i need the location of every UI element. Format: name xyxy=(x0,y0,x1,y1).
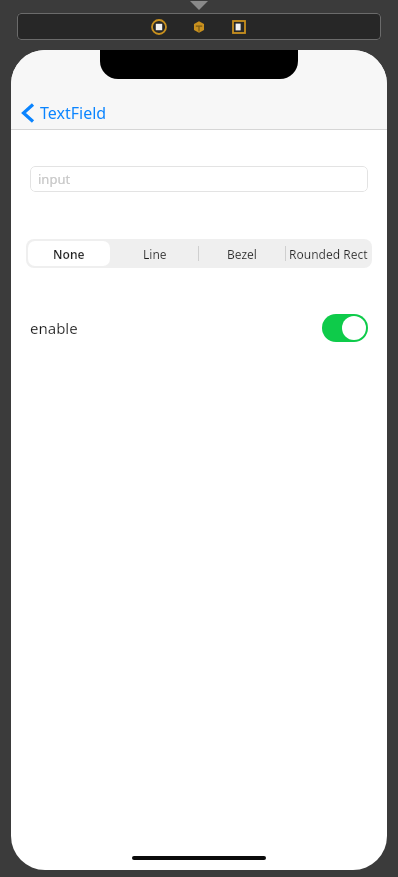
staticText: enable xyxy=(30,318,78,338)
staticText: Rounded Rect xyxy=(289,246,368,262)
button[interactable]: Stop xyxy=(149,17,169,37)
button[interactable]: Layout Inspector xyxy=(189,17,209,37)
staticText: Line xyxy=(143,246,167,262)
button[interactable]: input xyxy=(30,166,368,192)
staticText: Bezel xyxy=(227,246,257,262)
button[interactable]: enable toggle xyxy=(322,314,368,342)
staticText: input xyxy=(38,170,71,188)
button[interactable]: None xyxy=(26,239,112,268)
staticText: TextField xyxy=(40,102,107,124)
button[interactable]: TextField xyxy=(20,102,107,124)
button[interactable]: Line xyxy=(112,239,198,268)
staticText: None xyxy=(53,246,85,262)
button[interactable]: Rounded Rect xyxy=(285,239,372,268)
button[interactable]: Screenshot xyxy=(229,17,249,37)
button[interactable]: Bezel xyxy=(198,239,285,268)
